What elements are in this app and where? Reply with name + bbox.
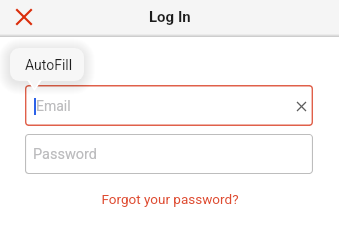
button[interactable]: Email <box>25 85 313 126</box>
button[interactable]: Forgot your password? <box>93 188 247 210</box>
button[interactable]: AutoFill <box>10 48 84 81</box>
staticText: Password <box>33 146 98 163</box>
button[interactable]: Clear text <box>291 96 311 116</box>
button[interactable]: Close <box>10 3 38 31</box>
staticText: Email <box>36 98 71 114</box>
staticText: Log In <box>149 8 191 26</box>
button[interactable]: Password <box>25 134 313 174</box>
staticText: AutoFill <box>25 57 73 73</box>
